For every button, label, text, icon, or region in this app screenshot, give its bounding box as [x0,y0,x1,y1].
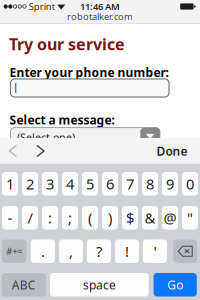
button[interactable]: ( [82,206,98,229]
staticText: Go [167,277,183,293]
staticText: ) [108,208,112,227]
staticText: , [69,241,73,261]
staticText: ? [96,241,102,261]
staticText: ! [125,241,129,261]
button[interactable]: 5 [82,172,98,195]
staticText: #+= [6,245,22,257]
button[interactable] [173,239,197,263]
button[interactable]: ; [62,206,78,229]
staticText: robotalker.com [67,10,133,23]
staticText: ( [88,208,92,227]
button[interactable]: 1 [2,172,18,195]
staticText: 1 [6,174,14,193]
button[interactable]: 4 [62,172,78,195]
button[interactable]: space [50,273,149,296]
button[interactable]: Previous field [2,138,24,164]
button[interactable]: . [31,239,55,263]
staticText: Select a message: [9,112,114,128]
button[interactable]: " [182,206,198,229]
staticText: (Select one) [17,130,75,144]
staticText: 3 [46,174,54,193]
staticText: 0 [186,174,194,193]
staticText: 9 [166,174,174,193]
staticText: & [144,208,155,227]
button[interactable]: 3 [42,172,58,195]
button[interactable]: @ [162,206,178,229]
button[interactable]: 8 [142,172,158,195]
button[interactable]: #+= [2,239,26,263]
staticText: - [7,208,12,227]
button[interactable]: 7 [122,172,138,195]
staticText: : [48,208,52,227]
staticText: @ [163,208,176,227]
button[interactable]: Next field [29,138,51,164]
staticText: 7 [126,174,134,193]
staticText: " [187,208,193,227]
button[interactable]: 0 [182,172,198,195]
button[interactable]: Done [150,138,194,164]
staticText: 5 [86,174,94,193]
button[interactable]: , [59,239,83,263]
button[interactable]: 2 [22,172,38,195]
button[interactable]: Go [154,273,197,296]
staticText: ABC [12,277,36,293]
button[interactable]: 9 [162,172,178,195]
staticText: space [83,277,116,293]
button[interactable]: ! [115,239,139,263]
staticText: ; [68,208,72,227]
button[interactable]: ABC [1,273,46,296]
staticText: 11:46 AM [80,0,120,13]
button[interactable]: ' [143,239,167,263]
button[interactable]: 6 [102,172,118,195]
staticText: 8 [146,174,154,193]
button[interactable]: / [22,206,38,229]
staticText: 6 [106,174,114,193]
button[interactable]: ? [87,239,111,263]
staticText: Enter your phone number: [9,64,168,80]
staticText: Done [156,143,187,159]
staticText: 2 [26,174,34,193]
staticText: Sprint [29,0,55,13]
staticText: . [41,241,45,261]
staticText: ' [153,241,156,261]
button[interactable]: & [142,206,158,229]
button[interactable]: ) [102,206,118,229]
staticText: 4 [66,174,74,193]
staticText: $ [126,208,134,227]
button[interactable]: - [2,206,18,229]
staticText: / [27,208,32,227]
button[interactable]: $ [122,206,138,229]
staticText: Try our service [9,33,125,54]
button[interactable]: : [42,206,58,229]
